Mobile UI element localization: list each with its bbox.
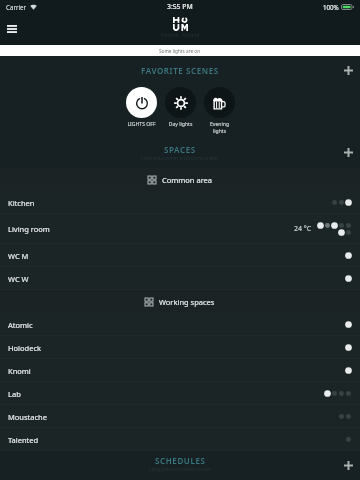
button[interactable]: Holodeck — [0, 336, 360, 359]
button[interactable]: Atomic — [0, 313, 360, 336]
button[interactable]: Common area — [0, 168, 360, 191]
staticText: Carrier — [6, 3, 27, 11]
button[interactable]: Add — [339, 143, 357, 161]
staticText: Talented — [8, 435, 39, 445]
button[interactable]: LIGHTS OFF — [126, 87, 157, 128]
staticText: Atomic — [8, 320, 33, 330]
staticText: LIGHTS OFF — [126, 121, 157, 128]
button[interactable]: Add — [339, 61, 357, 79]
button[interactable]: Living room — [0, 214, 360, 244]
button[interactable]: WC M — [0, 244, 360, 267]
staticText: Holodeck — [8, 343, 42, 353]
button[interactable]: Some lights are on — [0, 45, 360, 56]
staticText: Lab — [8, 389, 21, 399]
staticText: FAVORITE SCENES — [141, 65, 219, 76]
button[interactable]: Talented — [0, 428, 360, 451]
button[interactable]: Kitchen — [0, 191, 360, 214]
staticText: WC M — [8, 251, 29, 261]
staticText: Knomi — [8, 366, 31, 376]
staticText: Day lights — [165, 121, 196, 128]
staticText: SPACES — [164, 144, 196, 155]
button[interactable]: Add — [339, 456, 357, 474]
button[interactable]: WC W — [0, 267, 360, 290]
staticText: 3:55 PM — [167, 2, 193, 11]
staticText: SCHEDULES — [155, 455, 206, 466]
staticText: Working spaces — [159, 297, 215, 307]
staticText: Evening lights — [204, 121, 235, 135]
staticText: Moustache — [8, 412, 47, 422]
button[interactable]: Evening lights — [204, 87, 235, 135]
staticText: Common area — [162, 175, 213, 185]
button[interactable]: Menu — [1, 18, 23, 40]
button[interactable]: Lab — [0, 382, 360, 405]
staticText: Living room — [8, 224, 50, 234]
staticText: Long press schedules to edit — [149, 466, 211, 472]
button[interactable]: Day lights — [165, 87, 196, 128]
button[interactable]: Moustache — [0, 405, 360, 428]
staticText: Kitchen — [8, 198, 35, 208]
staticText: 24 °C — [294, 224, 312, 234]
staticText: Helsinki, Finland — [161, 32, 200, 39]
staticText: Long press zones and rooms to edit — [141, 155, 219, 161]
staticText: Some lights are on — [159, 48, 201, 54]
button[interactable]: Working spaces — [0, 290, 360, 313]
staticText: WC W — [8, 274, 29, 284]
button[interactable]: Knomi — [0, 359, 360, 382]
staticText: 100% — [323, 3, 339, 11]
